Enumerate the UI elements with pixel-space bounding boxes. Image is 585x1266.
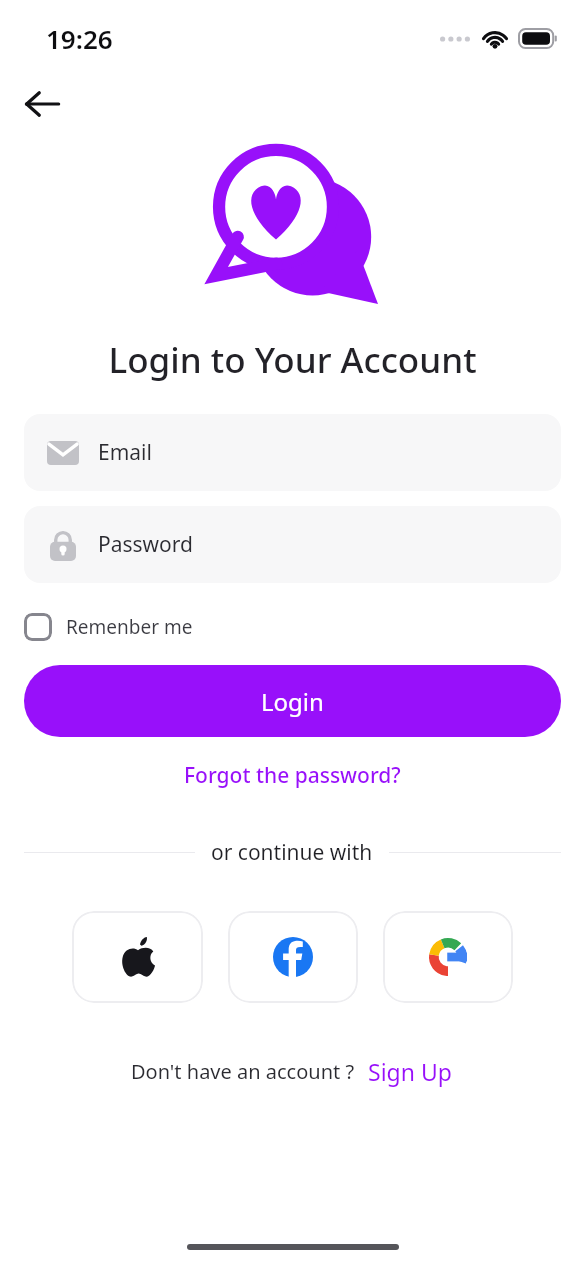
button[interactable]: Forgot the password? [0,757,585,794]
staticText: Sign Up [368,1056,452,1087]
button[interactable]: Sign Up [365,1053,455,1090]
button[interactable]: Password [24,506,561,583]
staticText: Login to Your Account [0,336,585,384]
staticText: Password [98,530,193,559]
staticText: Email [98,438,152,467]
staticText: Forgot the password? [184,761,401,790]
button[interactable]: Remenber me [16,605,201,649]
staticText: Login [261,685,324,718]
button[interactable]: Login [24,665,561,737]
button[interactable]: Sign in with Apple [72,911,203,1003]
staticText: or continue with [211,838,373,867]
button[interactable]: Sign in with Google [383,911,513,1003]
button[interactable]: Sign in with Facebook [228,911,358,1003]
staticText: Remenber me [66,614,193,640]
staticText: 19:26 [46,21,113,56]
button[interactable]: Back [14,76,70,132]
button[interactable]: Email [24,414,561,491]
staticText: Don't have an account ? [131,1058,355,1085]
